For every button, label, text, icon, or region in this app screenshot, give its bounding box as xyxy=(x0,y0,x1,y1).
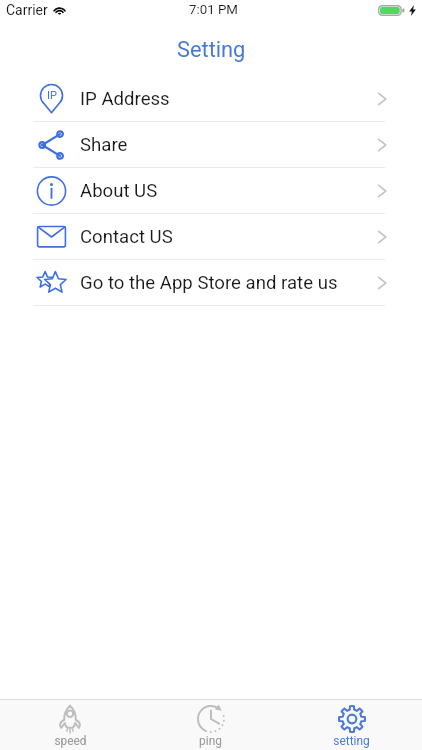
staticText: IP Address xyxy=(80,88,170,110)
button[interactable]: Go to the App Store and rate us xyxy=(0,260,422,306)
button[interactable]: Contact US xyxy=(0,214,422,260)
staticText: IP xyxy=(47,89,57,102)
staticText: Setting xyxy=(177,37,246,63)
button[interactable]: ping xyxy=(140,700,281,750)
staticText: ping xyxy=(199,734,222,748)
staticText: Share xyxy=(80,134,128,156)
button[interactable]: speed xyxy=(0,700,140,750)
staticText: setting xyxy=(333,734,370,748)
staticText: Go to the App Store and rate us xyxy=(80,272,338,294)
button[interactable]: setting xyxy=(281,700,422,750)
button[interactable]: About US xyxy=(0,168,422,214)
staticText: Carrier xyxy=(6,2,48,18)
staticText: speed xyxy=(54,734,87,748)
staticText: 7:01 PM xyxy=(189,2,238,18)
staticText: About US xyxy=(80,180,158,202)
button[interactable]: Share xyxy=(0,122,422,168)
staticText: Contact US xyxy=(80,226,173,248)
button[interactable]: IP xyxy=(0,76,422,122)
